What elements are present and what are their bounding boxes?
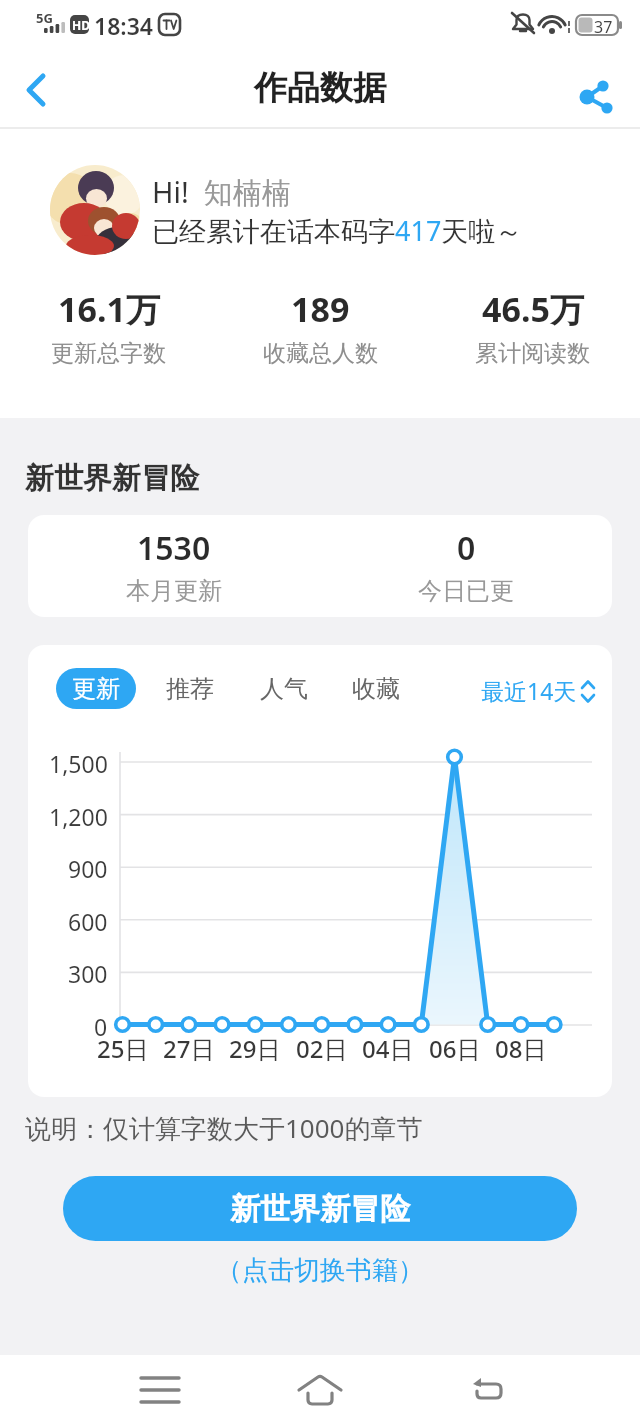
staticText: 已经累计在话本码字417天啦～ bbox=[152, 212, 523, 249]
staticText: 作品数据 bbox=[254, 67, 386, 109]
button[interactable]: 1530 bbox=[28, 515, 320, 617]
staticText: 300 bbox=[68, 958, 108, 986]
button[interactable]: 推荐 bbox=[165, 672, 215, 706]
button[interactable] bbox=[460, 1360, 520, 1420]
button[interactable]: 人气 bbox=[259, 672, 309, 706]
button[interactable]: 16.1万 bbox=[8, 286, 208, 366]
staticText: 推荐 bbox=[166, 674, 214, 704]
staticText: HD bbox=[72, 17, 90, 33]
staticText: 25日 bbox=[97, 1032, 149, 1062]
staticText: 0 bbox=[457, 526, 476, 570]
staticText: 今日已更 bbox=[418, 576, 514, 606]
button[interactable] bbox=[570, 72, 622, 120]
staticText: 说明：仅计算字数大于1000的章节 bbox=[25, 1110, 423, 1146]
staticText: 新世界新冒险 bbox=[25, 460, 199, 497]
staticText: 37 bbox=[594, 16, 613, 38]
staticText: 1,200 bbox=[49, 801, 108, 829]
staticText: 02日 bbox=[296, 1032, 348, 1062]
staticText: 06日 bbox=[429, 1032, 481, 1062]
staticText: 人气 bbox=[260, 674, 308, 704]
button[interactable] bbox=[130, 1360, 190, 1420]
staticText: 更新总字数 bbox=[51, 339, 166, 366]
staticText: 本月更新 bbox=[126, 576, 222, 606]
button[interactable]: 0 bbox=[320, 515, 612, 617]
staticText: 新世界新冒险 bbox=[230, 1190, 410, 1228]
staticText: 收藏 bbox=[352, 674, 400, 704]
staticText: 04日 bbox=[362, 1032, 414, 1062]
staticText: 更新 bbox=[72, 674, 120, 704]
button[interactable] bbox=[14, 68, 58, 112]
staticText: 18:34 bbox=[94, 10, 153, 41]
staticText: 46.5万 bbox=[482, 286, 584, 332]
staticText: 600 bbox=[68, 906, 108, 934]
button[interactable]: 46.5万 bbox=[432, 286, 632, 366]
staticText: 1530 bbox=[137, 526, 211, 570]
button[interactable] bbox=[290, 1360, 350, 1420]
staticText: 1,500 bbox=[49, 748, 108, 776]
button[interactable]: 最近14天 bbox=[478, 670, 598, 708]
staticText: 最近14天 bbox=[481, 675, 577, 706]
button[interactable] bbox=[50, 165, 140, 255]
staticText: 0 bbox=[94, 1011, 108, 1039]
button[interactable]: 新世界新冒险 bbox=[63, 1176, 577, 1241]
staticText: 收藏总人数 bbox=[263, 339, 378, 366]
staticText: 08日 bbox=[495, 1032, 547, 1062]
staticText: （点击切换书籍） bbox=[216, 1254, 424, 1287]
button[interactable]: 189 bbox=[220, 286, 420, 366]
staticText: 29日 bbox=[229, 1032, 281, 1062]
staticText: 27日 bbox=[163, 1032, 215, 1062]
staticText: 16.1万 bbox=[58, 286, 160, 332]
staticText: Hi! 知楠楠 bbox=[152, 172, 291, 212]
staticText: 5G bbox=[36, 9, 53, 27]
staticText: 189 bbox=[291, 286, 350, 332]
button[interactable]: 收藏 bbox=[351, 672, 401, 706]
button[interactable]: （点击切换书籍） bbox=[0, 1252, 640, 1288]
button[interactable]: 更新 bbox=[56, 668, 136, 709]
staticText: 累计阅读数 bbox=[475, 339, 590, 366]
staticText: 900 bbox=[68, 853, 108, 881]
